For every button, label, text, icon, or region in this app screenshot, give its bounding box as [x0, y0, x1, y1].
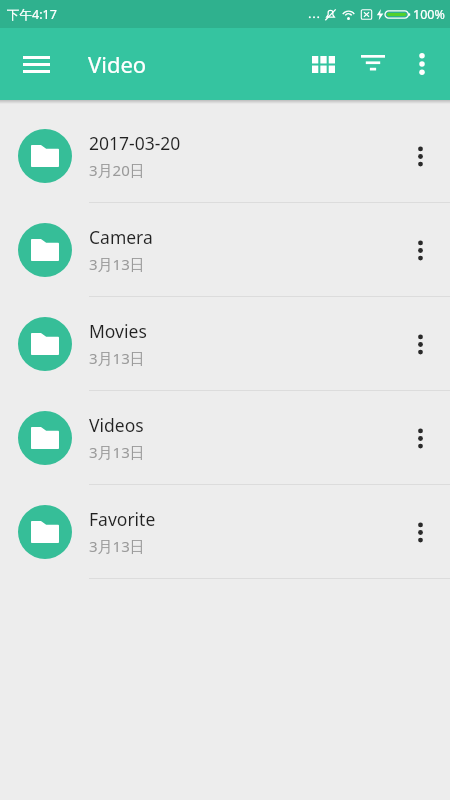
button[interactable]: Movies	[0, 297, 450, 391]
button[interactable]: More options for 2017-03-20	[398, 134, 442, 178]
button[interactable]: More options for Movies	[398, 322, 442, 366]
button[interactable]: More options	[398, 40, 446, 88]
staticText: Camera	[89, 225, 153, 249]
button[interactable]: Grid view	[298, 39, 348, 89]
button[interactable]: Videos	[0, 391, 450, 485]
button[interactable]: Open navigation drawer	[10, 38, 62, 90]
staticText: Video	[88, 49, 147, 79]
button[interactable]: 2017-03-20	[0, 109, 450, 203]
button[interactable]: Favorite	[0, 485, 450, 579]
staticText: Videos	[89, 413, 144, 437]
button[interactable]: More options for Camera	[398, 228, 442, 272]
button[interactable]: Camera	[0, 203, 450, 297]
staticText: 3月13日	[89, 254, 145, 274]
staticText: Favorite	[89, 507, 156, 531]
staticText: 100%	[413, 6, 445, 23]
staticText: 3月13日	[89, 536, 145, 556]
staticText: 3月13日	[89, 348, 145, 368]
staticText: Movies	[89, 319, 147, 343]
staticText: 3月13日	[89, 442, 145, 462]
button[interactable]: More options for Videos	[398, 416, 442, 460]
staticText: 3月20日	[89, 160, 145, 180]
staticText: 2017-03-20	[89, 131, 181, 155]
staticText: 下午4:17	[7, 6, 57, 23]
button[interactable]: More options for Favorite	[398, 510, 442, 554]
button[interactable]: Sort and filter	[348, 39, 398, 89]
